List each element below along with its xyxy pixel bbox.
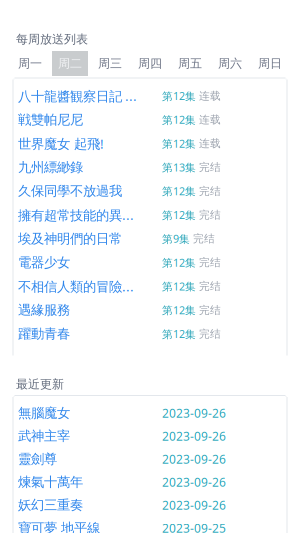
button[interactable]: 電器少女 (12, 251, 287, 274)
staticText: 不相信人類的冒險... (18, 277, 134, 295)
button[interactable]: 戦雙帕尼尼 (12, 108, 287, 132)
staticText: 煉氣十萬年 (18, 474, 83, 490)
staticText: 2023-09-26 (162, 405, 226, 421)
button[interactable]: 周日 (250, 51, 290, 76)
button[interactable]: 不相信人類的冒險... (12, 274, 287, 298)
button[interactable]: 埃及神明們的日常 (12, 227, 287, 251)
staticText: 遇緣服務 (18, 302, 70, 318)
staticText: 完结 (190, 232, 215, 245)
button[interactable]: 周一 (10, 51, 50, 76)
staticText: 第12集 (162, 255, 196, 270)
staticText: 第12集 (162, 113, 196, 127)
button[interactable]: 九州縹緲錄 (12, 155, 287, 179)
staticText: 完结 (196, 161, 221, 174)
staticText: 躍動青春 (18, 326, 70, 342)
staticText: 第12集 (162, 184, 196, 198)
staticText: 2023-09-26 (162, 451, 226, 467)
button[interactable]: 妖幻三重奏 (12, 493, 287, 516)
staticText: 2023-09-26 (162, 497, 226, 513)
button[interactable]: 煉氣十萬年 (12, 470, 287, 493)
staticText: 第13集 (162, 160, 196, 174)
staticText: 最近更新 (16, 377, 64, 392)
button[interactable]: 八十龍醬観察日記 ... (12, 84, 287, 108)
staticText: 完结 (196, 256, 221, 269)
staticText: 周日 (258, 56, 282, 71)
staticText: 第12集 (162, 279, 196, 293)
staticText: 2023-09-25 (162, 520, 226, 533)
staticText: 第12集 (162, 208, 196, 222)
staticText: 武神主宰 (18, 428, 70, 444)
staticText: 第12集 (162, 303, 196, 317)
button[interactable]: 世界魔女 起飛! (12, 132, 287, 155)
button[interactable]: 周六 (210, 51, 250, 76)
staticText: 戦雙帕尼尼 (18, 111, 83, 128)
staticText: 無腦魔女 (18, 405, 70, 421)
staticText: 周六 (218, 56, 242, 71)
staticText: 完结 (196, 280, 221, 293)
staticText: 第12集 (162, 327, 196, 341)
staticText: 连载 (196, 89, 221, 102)
staticText: 第12集 (162, 136, 196, 151)
staticText: 久保同學不放過我 (18, 183, 122, 199)
staticText: 妖幻三重奏 (18, 497, 83, 513)
button[interactable]: 周四 (130, 51, 170, 76)
staticText: 電器少女 (18, 254, 70, 271)
button[interactable]: 遇緣服務 (12, 298, 287, 322)
staticText: 2023-09-26 (162, 474, 226, 490)
staticText: 每周放送列表 (16, 32, 88, 47)
staticText: 连载 (196, 137, 221, 150)
staticText: 埃及神明們的日常 (18, 230, 122, 247)
button[interactable]: 武神主宰 (12, 424, 287, 447)
staticText: 连载 (196, 113, 221, 126)
staticText: 周一 (18, 56, 42, 71)
button[interactable]: 周二 (50, 51, 90, 76)
button[interactable]: 躍動青春 (12, 322, 287, 346)
staticText: 完结 (196, 303, 221, 317)
staticText: 擁有超常技能的異... (18, 206, 134, 224)
staticText: 完结 (196, 208, 221, 221)
button[interactable]: 無腦魔女 (12, 401, 287, 424)
button[interactable]: 靈劍尊 (12, 447, 287, 470)
staticText: 八十龍醬観察日記 ... (18, 87, 137, 105)
button[interactable]: 擁有超常技能的異... (12, 203, 287, 227)
staticText: 寶可夢 地平線 (18, 520, 100, 533)
staticText: 周四 (138, 56, 162, 71)
staticText: 九州縹緲錄 (18, 159, 83, 175)
staticText: 世界魔女 起飛! (18, 135, 104, 152)
staticText: 靈劍尊 (18, 451, 57, 467)
button[interactable]: 周五 (170, 51, 210, 76)
staticText: 周五 (178, 56, 202, 71)
button[interactable]: 周三 (90, 51, 130, 76)
staticText: 第9集 (162, 232, 190, 246)
staticText: 2023-09-26 (162, 428, 226, 444)
staticText: 完结 (196, 184, 221, 198)
staticText: 周二 (58, 56, 82, 71)
staticText: 周三 (98, 56, 122, 71)
button[interactable]: 久保同學不放過我 (12, 179, 287, 203)
staticText: 完结 (196, 327, 221, 340)
staticText: 第12集 (162, 89, 196, 103)
button[interactable]: 寶可夢 地平線 (12, 516, 287, 533)
